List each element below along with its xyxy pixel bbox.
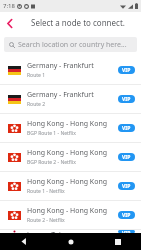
button[interactable]: Back [0,13,20,33]
button[interactable]: Germany - Frankfurt [0,56,141,84]
button[interactable]: Hong Kong - Hong Kong [0,201,141,229]
button[interactable]: Search location or country here... [4,37,137,52]
button[interactable]: Hong Kong - Hong Kong [0,143,141,171]
staticText: VIP [122,125,131,132]
staticText: VIP [122,212,131,219]
button[interactable]: VIP [118,153,135,161]
button[interactable]: VIP [118,182,135,190]
staticText: VIP [122,230,131,233]
staticText: Germany - Frankfurt [27,90,94,100]
button[interactable]: VIP [118,230,135,233]
staticText: BGP Route 2 - Netflix [27,159,76,166]
staticText: Route 1 [27,72,46,79]
button[interactable]: Recent apps [94,233,141,250]
staticText: Hong Kong - Hong Kong [27,206,108,216]
staticText: Hong Kong - Hong Kong [27,177,108,187]
button[interactable]: VIP [118,211,135,219]
button[interactable]: Hong Kong - Hong Kong [0,172,141,200]
button[interactable]: Back [0,233,47,250]
staticText: Select a node to connect. [31,17,125,28]
button[interactable]: VIP [118,66,135,74]
staticText: Search location or country here... [18,40,127,50]
staticText: VIP [122,154,131,161]
staticText: Japan - Tokyo [27,230,71,233]
staticText: VIP [122,96,131,103]
button[interactable]: Germany - Frankfurt [0,85,141,113]
button[interactable]: VIP [118,124,135,132]
staticText: BGP Route 1 - Netflix [27,130,76,137]
staticText: VIP [122,67,131,74]
button[interactable]: Hong Kong - Hong Kong [0,114,141,142]
staticText: 7:18 [3,2,15,10]
staticText: Germany - Frankfurt [27,61,94,71]
button[interactable]: Home [47,233,94,250]
button[interactable]: Japan - Tokyo [0,230,141,233]
staticText: VIP [122,183,131,190]
staticText: Hong Kong - Hong Kong [27,119,108,129]
staticText: Route 1 - Netflix [27,188,65,195]
staticText: Route 2 - Netflix [27,217,65,224]
staticText: Route 2 [27,101,46,108]
button[interactable]: VIP [118,95,135,103]
staticText: Hong Kong - Hong Kong [27,148,108,158]
